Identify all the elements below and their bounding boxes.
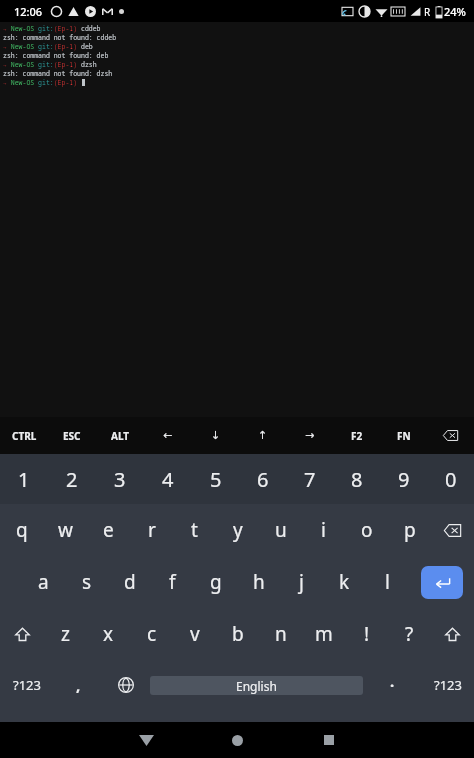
- button[interactable]: Change language: [102, 660, 150, 710]
- staticText: R: [424, 5, 431, 19]
- staticText: 7: [304, 466, 316, 493]
- staticText: h: [253, 569, 265, 595]
- button[interactable]: d: [108, 556, 151, 608]
- button[interactable]: p: [388, 504, 431, 556]
- staticText: c: [147, 621, 157, 647]
- staticText: FN: [397, 429, 411, 443]
- staticText: p: [404, 517, 416, 543]
- button[interactable]: Shift: [0, 608, 44, 660]
- button[interactable]: c: [130, 608, 173, 660]
- staticText: 8: [351, 466, 363, 493]
- button[interactable]: 5: [192, 454, 239, 504]
- button[interactable]: !: [345, 608, 388, 660]
- button[interactable]: 3: [96, 454, 144, 504]
- staticText: 1: [18, 466, 30, 493]
- button[interactable]: 9: [380, 454, 427, 504]
- button[interactable]: m: [302, 608, 345, 660]
- button[interactable]: h: [237, 556, 280, 608]
- staticText: F2: [351, 429, 363, 443]
- button[interactable]: i: [302, 504, 345, 556]
- staticText: z: [61, 621, 70, 647]
- button[interactable]: x: [87, 608, 130, 660]
- staticText: j: [299, 569, 304, 595]
- button[interactable]: f: [151, 556, 194, 608]
- staticText: s: [82, 569, 92, 595]
- button[interactable]: b: [216, 608, 259, 660]
- button[interactable]: a: [22, 556, 65, 608]
- staticText: !: [364, 621, 370, 647]
- staticText: 6: [257, 466, 269, 493]
- button[interactable]: 1: [0, 454, 48, 504]
- staticText: ↓: [211, 429, 221, 442]
- button[interactable]: q: [0, 504, 44, 556]
- staticText: n: [275, 621, 287, 647]
- staticText: zsh: command not found: dzsh: [3, 69, 113, 78]
- button[interactable]: n: [259, 608, 302, 660]
- staticText: w: [58, 517, 73, 543]
- button[interactable]: t: [173, 504, 216, 556]
- button[interactable]: FN: [380, 417, 427, 454]
- staticText: 3: [114, 466, 126, 493]
- button[interactable]: z: [44, 608, 87, 660]
- button[interactable]: w: [44, 504, 87, 556]
- button[interactable]: s: [65, 556, 108, 608]
- staticText: i: [321, 517, 326, 543]
- staticText: CTRL: [12, 429, 37, 443]
- button[interactable]: ←: [144, 417, 192, 454]
- button[interactable]: Back: [101, 722, 192, 758]
- button[interactable]: l: [366, 556, 409, 608]
- button[interactable]: CTRL: [0, 417, 48, 454]
- staticText: 12:06: [14, 4, 43, 19]
- staticText: ESC: [63, 429, 81, 443]
- button[interactable]: ↓: [192, 417, 239, 454]
- button[interactable]: k: [323, 556, 366, 608]
- button[interactable]: 2: [48, 454, 96, 504]
- button[interactable]: 7: [286, 454, 333, 504]
- staticText: e: [103, 517, 114, 543]
- button[interactable]: 4: [144, 454, 192, 504]
- staticText: b: [232, 621, 244, 647]
- staticText: → New-OS git:(Ep-1): [3, 78, 82, 87]
- button[interactable]: j: [280, 556, 323, 608]
- button[interactable]: →: [286, 417, 333, 454]
- button[interactable]: o: [345, 504, 388, 556]
- staticText: l: [385, 569, 390, 595]
- button[interactable]: ALT: [96, 417, 144, 454]
- staticText: m: [315, 621, 333, 647]
- button[interactable]: u: [259, 504, 302, 556]
- button[interactable]: Backspace: [431, 504, 474, 556]
- staticText: ,: [76, 675, 81, 695]
- staticText: k: [339, 569, 350, 595]
- button[interactable]: r: [130, 504, 173, 556]
- button[interactable]: English: [150, 676, 363, 695]
- button[interactable]: v: [173, 608, 216, 660]
- staticText: f: [169, 569, 176, 595]
- staticText: 4: [162, 466, 174, 493]
- button[interactable]: F2: [333, 417, 380, 454]
- button[interactable]: Shift: [431, 608, 474, 660]
- button[interactable]: ,: [54, 660, 102, 710]
- button[interactable]: ?123: [421, 660, 474, 710]
- button[interactable]: ESC: [48, 417, 96, 454]
- button[interactable]: ?: [388, 608, 431, 660]
- staticText: 2: [66, 466, 78, 493]
- staticText: zsh: command not found: deb: [3, 51, 109, 60]
- button[interactable]: ↑: [239, 417, 286, 454]
- button[interactable]: 0: [427, 454, 474, 504]
- staticText: x: [103, 621, 114, 647]
- button[interactable]: 6: [239, 454, 286, 504]
- button[interactable]: Home: [192, 722, 283, 758]
- button[interactable]: ·: [363, 660, 421, 710]
- staticText: a: [38, 569, 49, 595]
- button[interactable]: ?123: [0, 660, 54, 710]
- staticText: English: [236, 678, 277, 694]
- button[interactable]: Backspace: [427, 417, 474, 454]
- staticText: ALT: [111, 429, 130, 443]
- button[interactable]: e: [87, 504, 130, 556]
- staticText: 24%: [444, 4, 466, 19]
- button[interactable]: Enter: [421, 566, 463, 599]
- button[interactable]: 8: [333, 454, 380, 504]
- button[interactable]: y: [216, 504, 259, 556]
- button[interactable]: Recent apps: [283, 722, 374, 758]
- button[interactable]: g: [194, 556, 237, 608]
